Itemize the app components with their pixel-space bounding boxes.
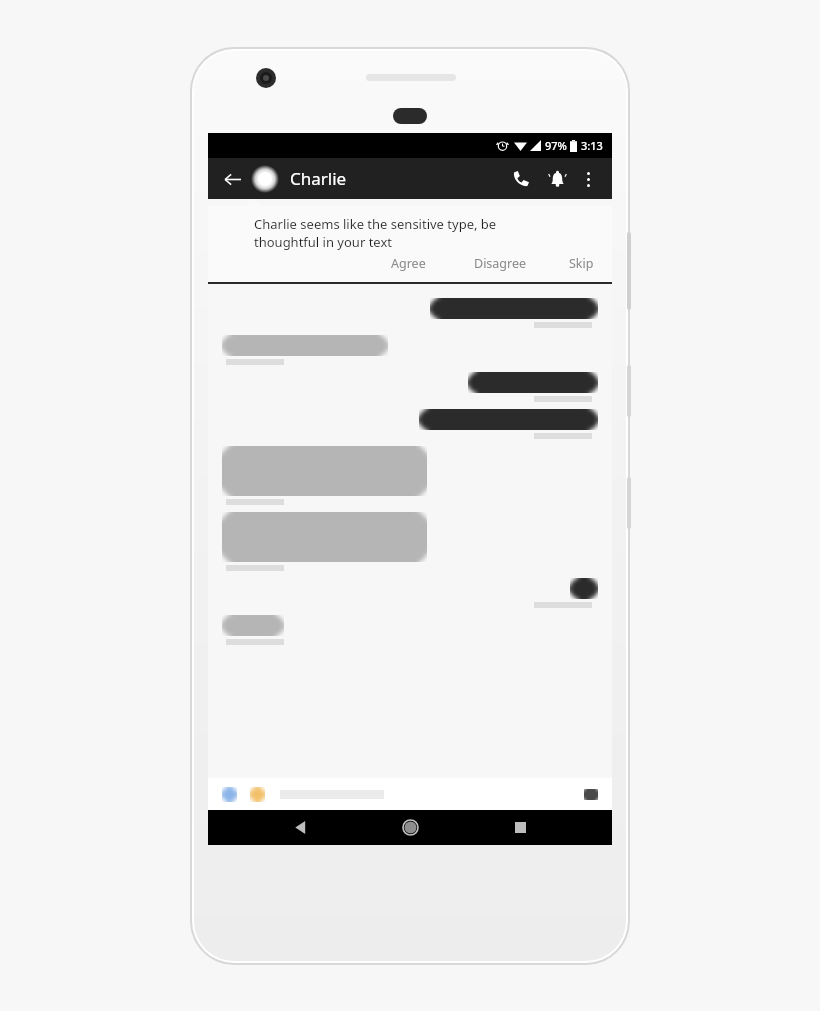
button[interactable]: Home bbox=[392, 810, 428, 845]
button[interactable]: Contact avatar bbox=[251, 165, 279, 193]
button[interactable] bbox=[570, 578, 598, 599]
staticText: Charlie seems like the sensitive type, b… bbox=[254, 215, 497, 251]
button[interactable] bbox=[222, 615, 284, 636]
button[interactable]: Back bbox=[219, 166, 245, 192]
button[interactable]: Add attachment bbox=[218, 783, 240, 805]
button[interactable] bbox=[222, 335, 388, 356]
button[interactable] bbox=[222, 512, 427, 562]
button[interactable] bbox=[430, 298, 598, 319]
button[interactable]: Notifications bbox=[542, 164, 572, 194]
staticText: 3:13 bbox=[581, 138, 603, 153]
button[interactable]: Agree bbox=[389, 251, 428, 275]
staticText: Agree bbox=[391, 255, 426, 271]
button[interactable] bbox=[468, 372, 598, 393]
button[interactable]: Send bbox=[580, 783, 602, 805]
button[interactable]: Back bbox=[282, 810, 318, 845]
staticText: Charlie bbox=[290, 167, 347, 190]
button[interactable] bbox=[222, 446, 427, 496]
button[interactable]: Call bbox=[506, 164, 536, 194]
staticText: Skip bbox=[569, 255, 594, 271]
button[interactable]: Disagree bbox=[472, 251, 529, 275]
button[interactable] bbox=[280, 784, 580, 804]
button[interactable]: Skip bbox=[567, 251, 596, 275]
button[interactable]: Recents bbox=[502, 810, 538, 845]
button[interactable]: More options bbox=[575, 166, 601, 192]
staticText: Disagree bbox=[474, 255, 527, 271]
button[interactable] bbox=[419, 409, 598, 430]
button[interactable]: Stickers bbox=[246, 783, 268, 805]
staticText: 97% bbox=[545, 138, 567, 153]
